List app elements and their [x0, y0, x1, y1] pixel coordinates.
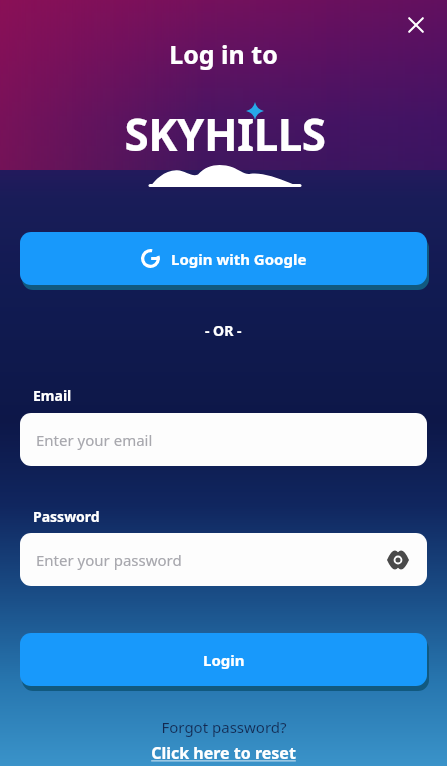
staticText: - OR -: [205, 321, 242, 340]
button[interactable]: Login with Google: [20, 232, 427, 285]
staticText: Forgot password?: [161, 717, 287, 737]
staticText: Login with Google: [171, 249, 307, 269]
staticText: Password: [33, 507, 100, 526]
button[interactable]: Click here to reset: [151, 742, 296, 764]
staticText: Enter your password: [36, 550, 182, 570]
button[interactable]: Login: [20, 633, 427, 686]
button[interactable]: Close: [396, 5, 436, 45]
button[interactable]: Enter your email: [20, 413, 427, 466]
button[interactable]: Show password: [379, 541, 417, 579]
staticText: Login: [203, 650, 245, 670]
button[interactable]: Enter your password: [20, 533, 427, 586]
staticText: Enter your email: [36, 430, 153, 450]
staticText: Email: [33, 386, 72, 405]
staticText: SKYHILLS: [124, 104, 326, 164]
staticText: Log in to: [169, 37, 278, 71]
staticText: Click here to reset: [151, 742, 296, 764]
